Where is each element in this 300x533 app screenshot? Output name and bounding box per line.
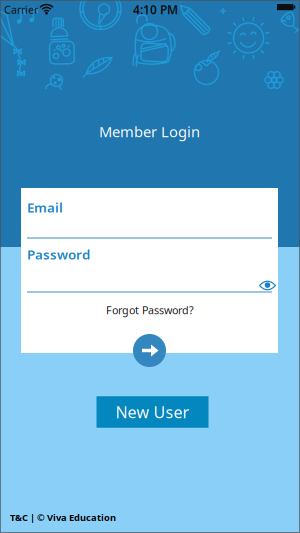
button[interactable] (133, 334, 166, 367)
staticText: New User (115, 401, 189, 423)
staticText: Member Login (99, 122, 200, 141)
staticText: Password (27, 245, 90, 263)
button[interactable]: T&C | © Viva Education (10, 511, 116, 524)
staticText: Carrier (4, 2, 38, 17)
button[interactable]: Password (27, 245, 272, 292)
staticText: T&C | © Viva Education (10, 511, 116, 524)
button[interactable] (258, 279, 276, 291)
button[interactable]: Forgot Password? (106, 303, 194, 317)
staticText: Email (27, 198, 63, 216)
button[interactable]: New User (96, 396, 208, 428)
staticText: 4:10 PM (133, 1, 178, 17)
button[interactable]: Email (27, 198, 272, 238)
staticText: Forgot Password? (106, 303, 194, 317)
